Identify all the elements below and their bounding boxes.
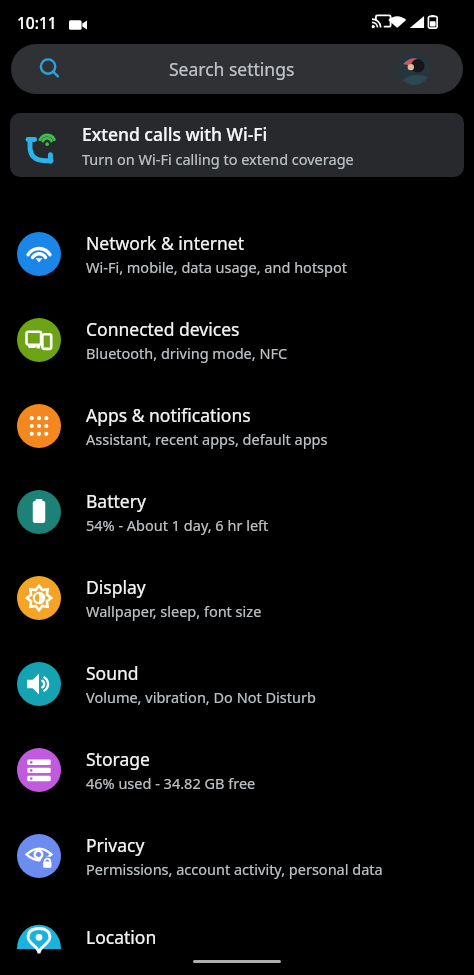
other: Search bbox=[38, 57, 62, 81]
staticText: Turn on Wi-Fi calling to extend coverage bbox=[82, 149, 354, 169]
staticText: Search settings bbox=[169, 57, 295, 81]
staticText: Volume, vibration, Do Not Disturb bbox=[86, 687, 316, 707]
button[interactable]: Display bbox=[0, 555, 474, 641]
button[interactable]: Account bbox=[398, 53, 430, 85]
staticText: Network & internet bbox=[86, 231, 245, 255]
staticText: Display bbox=[86, 575, 146, 599]
staticText: Sound bbox=[86, 661, 139, 685]
staticText: Bluetooth, driving mode, NFC bbox=[86, 343, 288, 363]
staticText: 46% used - 34.82 GB free bbox=[86, 773, 256, 793]
staticText: Connected devices bbox=[86, 317, 240, 341]
staticText: Extend calls with Wi-Fi bbox=[82, 122, 268, 146]
staticText: Apps & notifications bbox=[86, 403, 251, 427]
button[interactable]: Apps & notifications bbox=[0, 383, 474, 469]
staticText: 10:11 bbox=[17, 12, 57, 33]
button[interactable]: Search bbox=[11, 44, 463, 94]
staticText: Permissions, account activity, personal … bbox=[86, 859, 383, 879]
staticText: Wallpaper, sleep, font size bbox=[86, 601, 262, 621]
staticText: Location bbox=[86, 925, 157, 949]
button[interactable]: Privacy bbox=[0, 813, 474, 899]
button[interactable]: Network & internet bbox=[0, 211, 474, 297]
button[interactable]: Extend calls with Wi-Fi bbox=[10, 113, 464, 177]
button[interactable]: Battery bbox=[0, 469, 474, 555]
button[interactable]: Location bbox=[0, 899, 474, 975]
button[interactable]: Storage bbox=[0, 727, 474, 813]
staticText: Battery bbox=[86, 489, 146, 513]
staticText: Wi-Fi, mobile, data usage, and hotspot bbox=[86, 257, 347, 277]
button[interactable]: Sound bbox=[0, 641, 474, 727]
button[interactable]: Connected devices bbox=[0, 297, 474, 383]
staticText: Assistant, recent apps, default apps bbox=[86, 429, 328, 449]
staticText: Storage bbox=[86, 747, 150, 771]
staticText: Privacy bbox=[86, 833, 145, 857]
staticText: 54% - About 1 day, 6 hr left bbox=[86, 515, 269, 535]
